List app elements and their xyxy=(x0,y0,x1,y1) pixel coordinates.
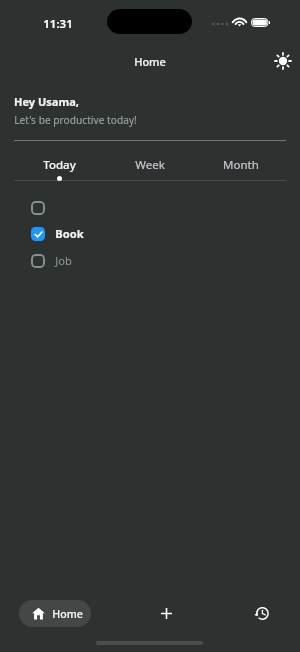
button[interactable] xyxy=(0,194,300,221)
button[interactable]: Month xyxy=(195,157,286,176)
staticText: Job xyxy=(55,253,72,268)
staticText: Home xyxy=(134,54,166,69)
button[interactable]: History xyxy=(245,597,278,630)
button[interactable]: Week xyxy=(104,157,195,176)
staticText: Today xyxy=(43,157,76,173)
staticText: Week xyxy=(135,157,165,173)
staticText: Month xyxy=(223,157,259,173)
button[interactable]: Job xyxy=(0,247,300,274)
staticText: Home xyxy=(52,607,83,621)
staticText: Let's be productive today! xyxy=(14,113,137,127)
staticText: Book xyxy=(55,226,84,241)
staticText: Hey Usama, xyxy=(14,94,79,109)
button[interactable]: Book xyxy=(0,220,300,247)
button[interactable]: Home xyxy=(19,600,91,627)
button[interactable]: Add task xyxy=(150,597,183,630)
staticText: 11:31 xyxy=(43,16,73,32)
button[interactable]: Today xyxy=(14,157,104,181)
button[interactable]: Toggle brightness xyxy=(269,47,297,75)
